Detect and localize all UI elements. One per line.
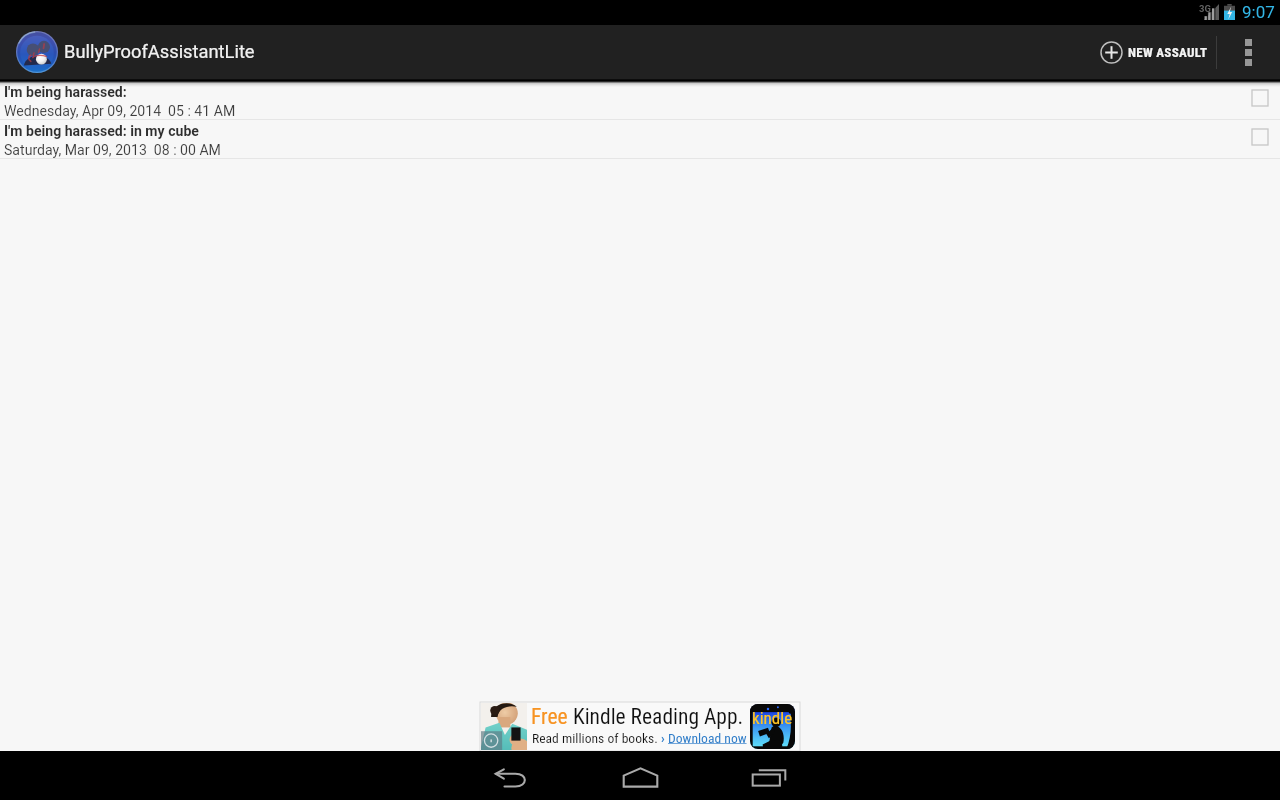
button[interactable]: Select item [1252,90,1268,106]
staticText: BullyProofAssistantLite [64,41,255,62]
staticText: › [658,732,668,746]
staticText: Saturday, Mar 09, 2013 08 : 00 AM [4,142,221,159]
button[interactable]: I'm being harassed: in my cube [0,120,1280,159]
staticText: I'm being harassed: in my cube [4,123,199,140]
button[interactable]: Back [464,751,560,800]
button[interactable]: Advertisement: Free Kindle Reading App [480,702,800,751]
button[interactable]: More options [1232,25,1264,80]
button[interactable]: BullyProofAssistantLite [0,25,265,80]
button[interactable]: I'm being harassed: [0,81,1280,120]
staticText: Read millions of books. [532,730,658,746]
staticText: Download now [668,730,747,746]
button[interactable]: Select item [1252,129,1268,145]
button[interactable]: NEW ASSAULT [1093,25,1213,80]
staticText: NEW ASSAULT [1128,45,1208,60]
staticText: Free [531,704,568,729]
button[interactable]: Recent apps [720,751,816,800]
button[interactable]: Home [592,751,688,800]
staticText: 3G [1199,3,1211,14]
staticText: kindle [752,708,793,728]
staticText: 9:07 [1242,2,1275,22]
staticText: I'm being harassed: [4,84,127,101]
staticText: Wednesday, Apr 09, 2014 05 : 41 AM [4,103,236,120]
staticText: Kindle Reading App. [568,704,744,729]
